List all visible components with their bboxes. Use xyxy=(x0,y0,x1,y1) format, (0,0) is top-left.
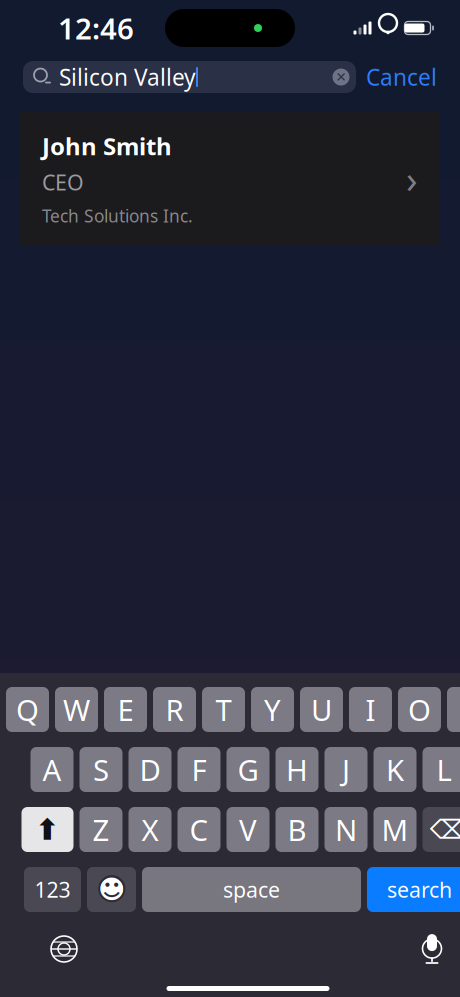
button[interactable]: V xyxy=(226,807,269,852)
button[interactable]: A xyxy=(30,747,73,792)
button[interactable]: O xyxy=(398,687,441,732)
button[interactable]: C xyxy=(177,807,220,852)
staticText: ☺ xyxy=(95,872,127,907)
button[interactable]: R xyxy=(153,687,196,732)
staticText: W xyxy=(63,690,90,729)
staticText: CEO xyxy=(42,168,84,196)
button[interactable]: G xyxy=(226,747,269,792)
button[interactable]: W xyxy=(55,687,98,732)
staticText: U xyxy=(311,690,332,729)
button[interactable]: K xyxy=(373,747,416,792)
staticText: 123 xyxy=(34,875,70,904)
button[interactable]: D xyxy=(128,747,171,792)
button[interactable]: L xyxy=(422,747,460,792)
staticText: Tech Solutions Inc. xyxy=(42,204,193,227)
button[interactable]: Delete xyxy=(422,807,460,852)
button[interactable]: H xyxy=(275,747,318,792)
staticText: D xyxy=(139,750,160,789)
staticText: S xyxy=(93,750,109,789)
staticText: › xyxy=(406,154,418,203)
button[interactable]: Emoji xyxy=(87,867,136,912)
staticText: X xyxy=(141,810,158,849)
button[interactable]: S xyxy=(79,747,122,792)
button[interactable]: Q xyxy=(6,687,49,732)
button[interactable]: 123 xyxy=(24,867,81,912)
button[interactable]: Shift xyxy=(21,807,73,852)
staticText: Z xyxy=(92,810,109,849)
staticText: search xyxy=(387,875,452,904)
staticText: ⌫ xyxy=(429,814,460,845)
staticText: G xyxy=(237,750,258,789)
button[interactable]: P xyxy=(447,687,460,732)
staticText: 12:46 xyxy=(58,8,134,47)
staticText: K xyxy=(386,750,404,789)
button[interactable]: Switch keyboard xyxy=(34,927,94,971)
staticText: ⬆ xyxy=(35,813,60,846)
staticText: Silicon Valley xyxy=(59,62,196,92)
staticText: E xyxy=(117,690,133,729)
button[interactable]: search xyxy=(367,867,460,912)
button[interactable]: J xyxy=(324,747,367,792)
staticText: John Smith xyxy=(42,130,172,162)
staticText: R xyxy=(165,690,183,729)
button[interactable]: X xyxy=(128,807,171,852)
staticText: T xyxy=(215,690,231,729)
button[interactable]: M xyxy=(373,807,416,852)
staticText: J xyxy=(342,750,350,789)
staticText: A xyxy=(42,750,61,789)
button[interactable]: Y xyxy=(251,687,294,732)
button[interactable]: Dictate xyxy=(402,927,460,971)
button[interactable]: space xyxy=(142,867,361,912)
staticText: ✕ xyxy=(335,69,346,85)
button[interactable]: Clear text xyxy=(326,61,356,93)
staticText: Q xyxy=(16,690,39,729)
button[interactable]: John Smith xyxy=(20,112,440,245)
staticText: M xyxy=(381,810,408,849)
staticText: L xyxy=(436,750,451,789)
staticText: Y xyxy=(264,690,281,729)
staticText: B xyxy=(287,810,306,849)
staticText: Cancel xyxy=(366,62,437,92)
staticText: F xyxy=(191,750,206,789)
staticText: O xyxy=(408,690,431,729)
button[interactable]: U xyxy=(300,687,343,732)
staticText: V xyxy=(239,810,257,849)
button[interactable]: T xyxy=(202,687,245,732)
staticText: H xyxy=(286,750,308,789)
staticText: space xyxy=(223,875,280,904)
button[interactable]: B xyxy=(275,807,318,852)
button[interactable]: F xyxy=(177,747,220,792)
button[interactable]: E xyxy=(104,687,147,732)
staticText: N xyxy=(335,810,357,849)
button[interactable]: N xyxy=(324,807,367,852)
staticText: I xyxy=(365,690,375,729)
staticText: C xyxy=(189,810,208,849)
button[interactable]: Cancel xyxy=(366,56,437,98)
button[interactable]: Z xyxy=(79,807,122,852)
button[interactable]: I xyxy=(349,687,392,732)
